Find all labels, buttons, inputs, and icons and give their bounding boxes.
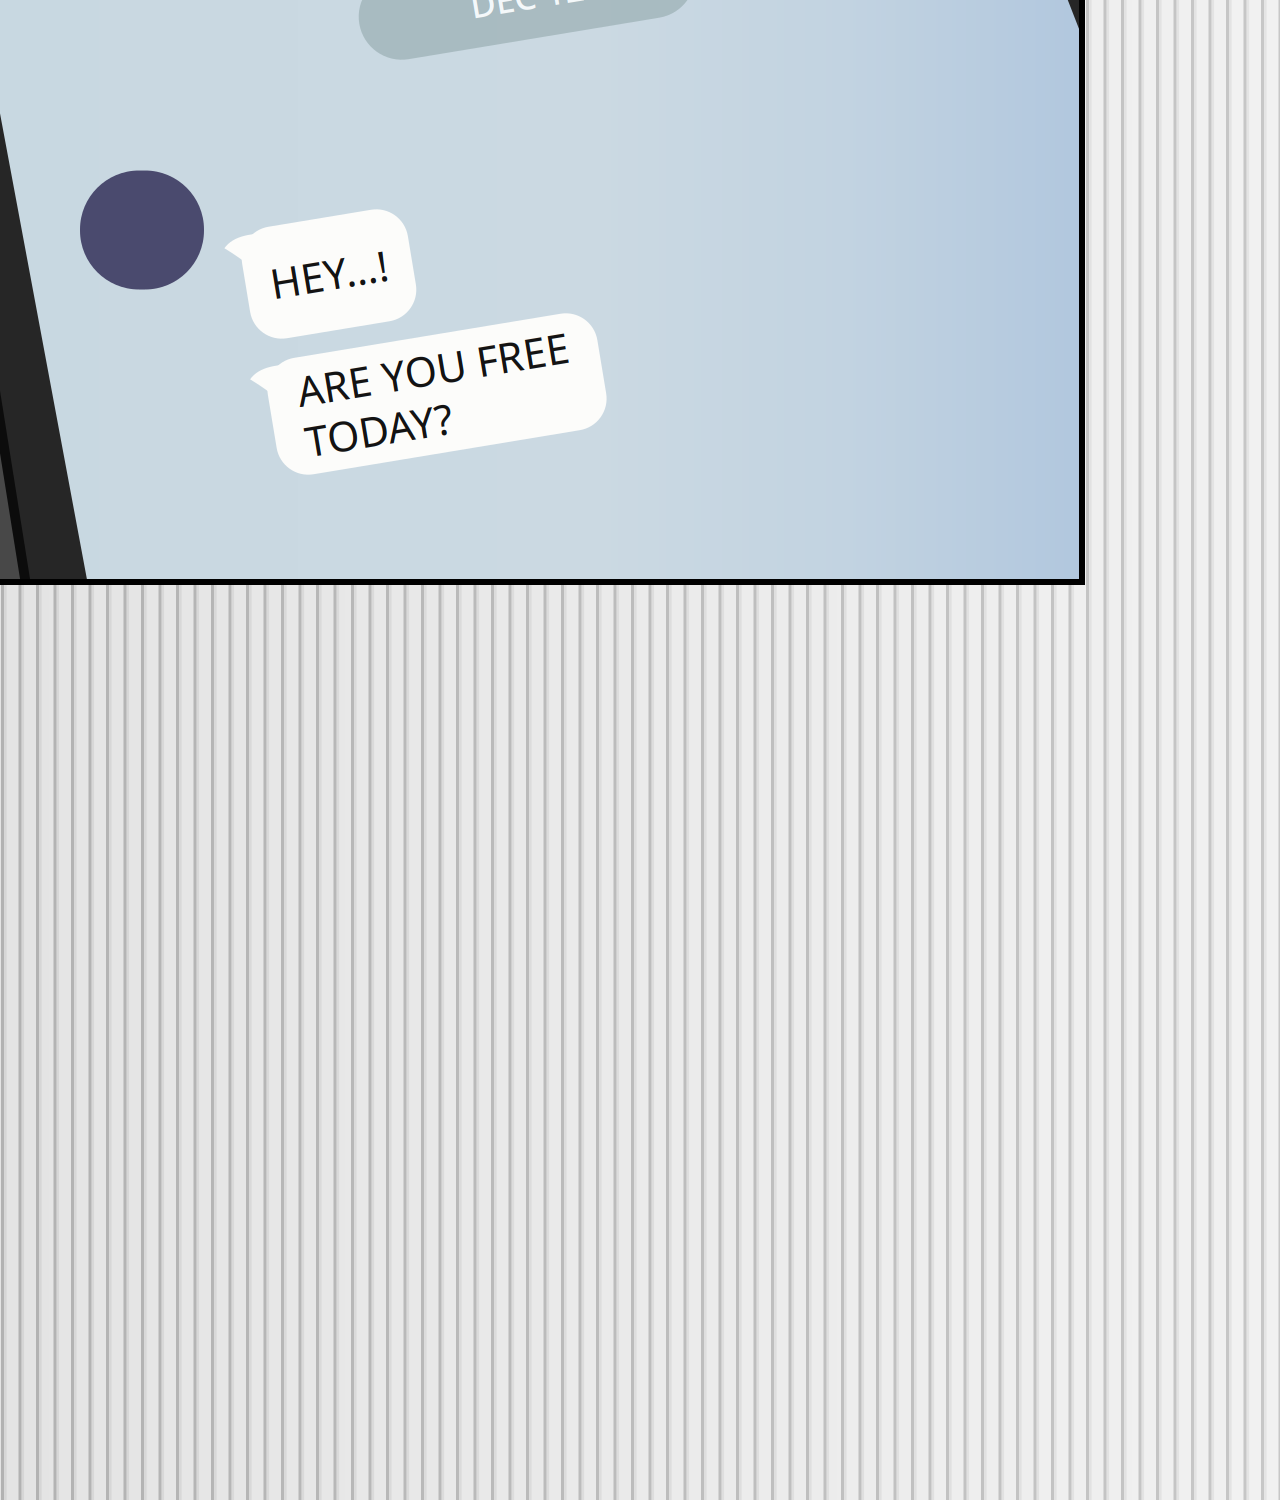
- button[interactable]: HEY…!: [245, 217, 413, 330]
- staticText: HEY…!: [269, 247, 388, 301]
- button[interactable]: ARE YOU FREE TODAY?: [270, 335, 604, 453]
- staticText: ARE YOU FREE TODAY?: [299, 341, 574, 447]
- button[interactable]: Contact profile photo: [80, 170, 204, 289]
- staticText: DEC 12: [469, 0, 584, 19]
